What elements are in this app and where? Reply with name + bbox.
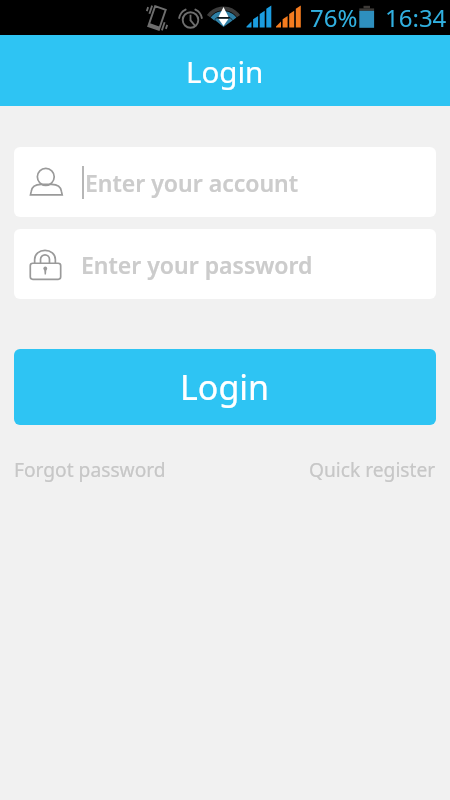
staticText: Enter your account (85, 167, 299, 198)
staticText: Login (186, 51, 264, 91)
staticText: Enter your password (81, 249, 313, 280)
button[interactable]: Enter your account (14, 147, 436, 217)
button[interactable]: Forgot password (14, 454, 166, 484)
button[interactable]: Quick register (309, 454, 436, 484)
staticText: Login (180, 364, 270, 410)
staticText: 76% (310, 1, 358, 34)
staticText: 16:34 (385, 1, 447, 34)
button[interactable]: Enter your password (14, 229, 436, 299)
button[interactable]: Login (14, 349, 436, 425)
staticText: Forgot password (14, 456, 166, 482)
staticText: Quick register (309, 456, 436, 482)
